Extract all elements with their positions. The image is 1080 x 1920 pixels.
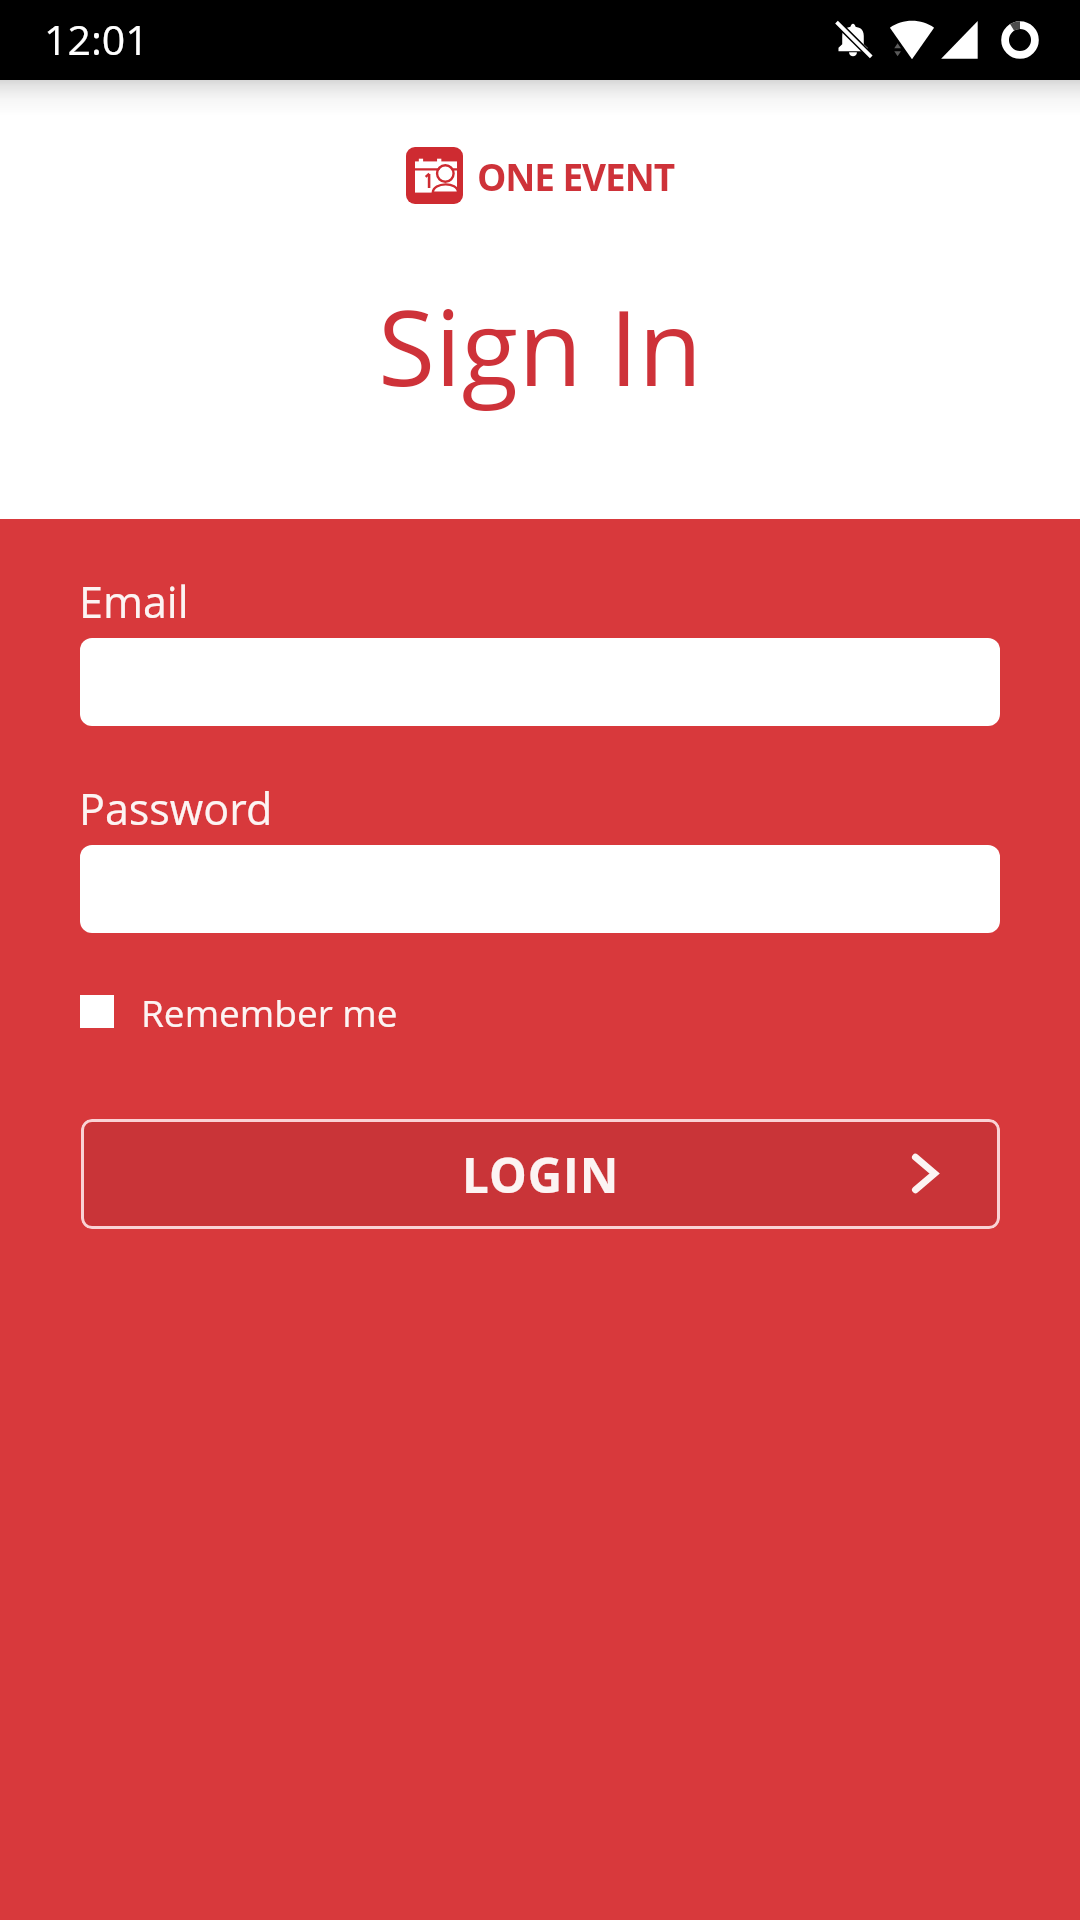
staticText: 12:01 (44, 11, 149, 67)
staticText: Email (79, 572, 189, 631)
other: Wi-Fi (888, 18, 936, 60)
staticText: Remember me (141, 987, 398, 1037)
staticText: LOGIN (462, 1142, 620, 1207)
button[interactable]: LOGIN (81, 1119, 1000, 1229)
other: Mobile signal (939, 18, 982, 60)
button[interactable]: Email input field (80, 638, 1000, 726)
button[interactable]: Password input field (80, 845, 1000, 933)
button[interactable]: Remember me (76, 987, 398, 1037)
staticText: ONE EVENT (477, 151, 674, 201)
staticText: Sign In (0, 275, 1080, 417)
staticText: Password (79, 779, 273, 838)
other: Silent mode (831, 17, 875, 61)
other: Battery (999, 19, 1041, 61)
other: Login (913, 1154, 937, 1193)
